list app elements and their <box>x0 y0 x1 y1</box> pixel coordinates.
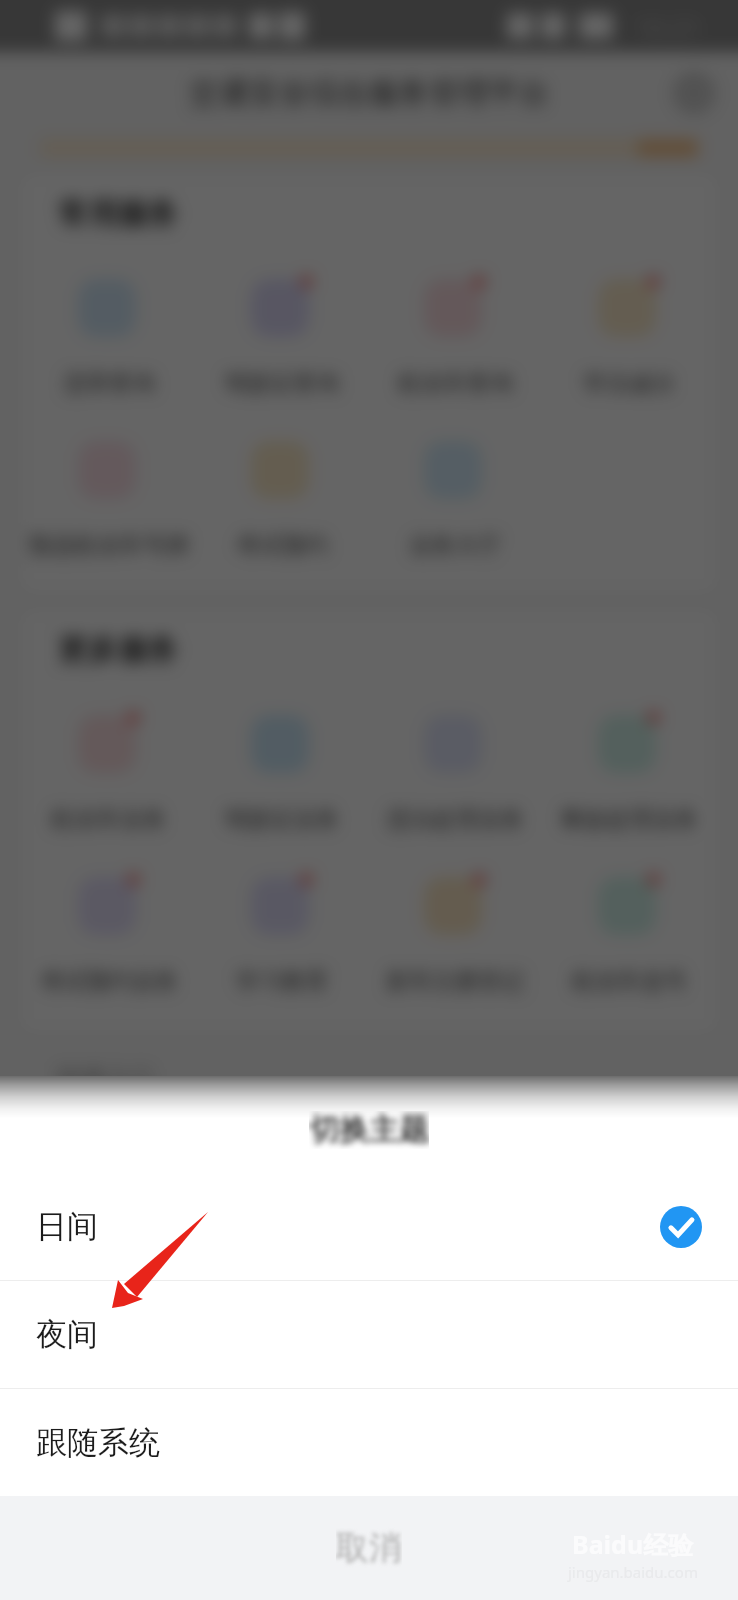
staticText: 夜间 <box>36 1315 98 1354</box>
staticText: 切换主题 <box>309 1111 429 1149</box>
staticText: 业务大厅 <box>409 531 501 560</box>
staticText: 学法减分 <box>583 369 675 398</box>
staticText: jingyan.baidu.com <box>568 1562 698 1582</box>
staticText: 机动车业务 <box>51 805 166 834</box>
staticText: 驾驶证查询 <box>224 369 339 398</box>
button[interactable]: 日间 <box>0 1173 738 1280</box>
staticText: Baidu经验 <box>572 1527 694 1561</box>
button[interactable]: 取消 <box>0 1496 738 1600</box>
staticText: 取消 <box>336 1527 402 1569</box>
staticText: 违法处理业务 <box>386 805 524 834</box>
staticText: 快捷入口 <box>58 1063 154 1093</box>
staticText: 预选机动车号牌 <box>28 531 189 560</box>
staticText: 机动车查询 <box>398 369 513 398</box>
staticText: 跟随系统 <box>36 1423 160 1462</box>
staticText: 交通安全综合服务管理平台 <box>189 74 549 112</box>
staticText: 学习教育 <box>236 967 328 996</box>
staticText: 违章查询 <box>63 369 155 398</box>
staticText: 考试预约 <box>236 531 328 560</box>
staticText: 常用服务 <box>58 195 178 233</box>
button[interactable]: 夜间 <box>0 1281 738 1388</box>
other: Selected <box>660 1206 702 1248</box>
button[interactable]: 跟随系统 <box>0 1389 738 1496</box>
staticText: 更多服务 <box>58 631 178 669</box>
staticText: 机动车选号 <box>572 967 687 996</box>
staticText: 新车注册登记 <box>386 967 524 996</box>
staticText: 事故处理业务 <box>560 805 698 834</box>
staticText: 驾驶证业务 <box>224 805 339 834</box>
staticText: 考试预约业务 <box>40 967 178 996</box>
staticText: 日间 <box>36 1207 98 1246</box>
